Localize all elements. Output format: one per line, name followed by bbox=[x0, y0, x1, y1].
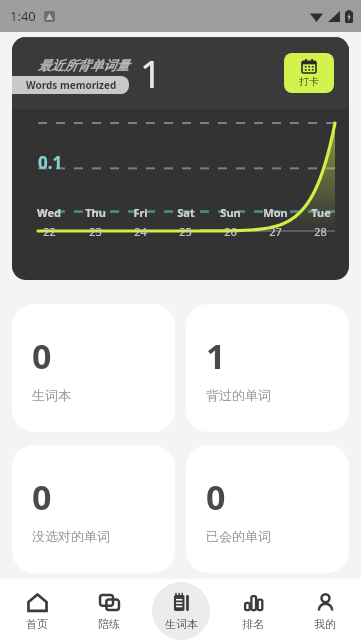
staticText: 陪练 bbox=[98, 617, 120, 631]
staticText: 打卡 bbox=[299, 75, 319, 88]
staticText: Mon bbox=[263, 205, 288, 220]
staticText: Wed bbox=[37, 205, 61, 220]
staticText: 首页 bbox=[26, 617, 48, 631]
button[interactable]: 生词本 bbox=[145, 579, 217, 643]
button[interactable]: 0 bbox=[12, 445, 175, 573]
other: 陪练 bbox=[99, 592, 120, 613]
staticText: 27 bbox=[269, 224, 282, 239]
button[interactable]: 我的 bbox=[289, 579, 361, 643]
staticText: 24 bbox=[134, 224, 147, 239]
staticText: 22 bbox=[43, 224, 56, 239]
staticText: 最近所背单词量 bbox=[38, 57, 129, 73]
other: 我的 bbox=[315, 592, 336, 613]
button[interactable]: 首页 bbox=[0, 579, 73, 643]
staticText: 生词本 bbox=[32, 387, 71, 403]
staticText: Tue bbox=[311, 205, 331, 220]
staticText: 26 bbox=[224, 224, 237, 239]
staticText: 1:40 bbox=[10, 7, 36, 25]
staticText: Thu bbox=[85, 205, 106, 220]
staticText: 排名 bbox=[242, 617, 264, 631]
staticText: 我的 bbox=[314, 617, 336, 631]
staticText: 已会的单词 bbox=[206, 528, 271, 544]
button[interactable]: 1 bbox=[186, 304, 349, 432]
staticText: 0 bbox=[32, 333, 52, 379]
other: 首页 bbox=[27, 592, 48, 613]
button[interactable]: 最近所背单词量 bbox=[12, 37, 349, 280]
button[interactable]: 排名 bbox=[217, 579, 289, 643]
staticText: Sat bbox=[177, 205, 195, 220]
staticText: 0.1 bbox=[38, 151, 63, 174]
staticText: 0 bbox=[32, 474, 52, 520]
other: 排名 bbox=[243, 592, 264, 613]
staticText: 背过的单词 bbox=[206, 387, 271, 403]
staticText: 没选对的单词 bbox=[32, 528, 110, 544]
staticText: 0 bbox=[206, 474, 226, 520]
button[interactable]: 0 bbox=[12, 304, 175, 432]
staticText: 28 bbox=[314, 224, 327, 239]
staticText: 生词本 bbox=[165, 617, 198, 631]
button[interactable]: 打卡 bbox=[284, 53, 334, 93]
staticText: 1 bbox=[206, 333, 226, 379]
button[interactable]: 陪练 bbox=[73, 579, 145, 643]
staticText: Words memorized bbox=[26, 78, 117, 92]
staticText: Sun bbox=[220, 205, 241, 220]
staticText: 1 bbox=[140, 47, 162, 99]
staticText: Fri bbox=[133, 205, 148, 220]
staticText: 23 bbox=[89, 224, 102, 239]
staticText: 25 bbox=[179, 224, 192, 239]
other: 生词本 bbox=[171, 592, 192, 613]
button[interactable]: 0 bbox=[186, 445, 349, 573]
